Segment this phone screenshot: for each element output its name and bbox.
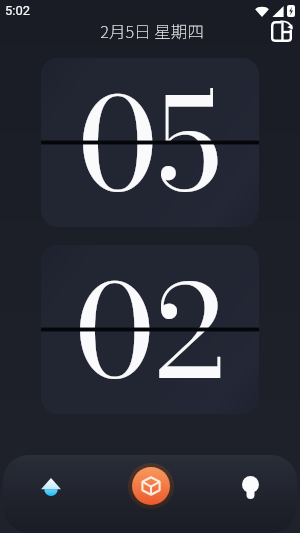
button[interactable]: 3D cube theme [128,463,174,509]
button[interactable]: Night light [228,465,272,509]
staticText: 5:02 [5,3,31,18]
staticText: 02 [75,245,225,403]
staticText: 2月5日 星期四 [100,19,204,43]
button[interactable]: 02 [41,245,259,414]
staticText: 05 [78,58,222,216]
button[interactable]: 05 [41,58,259,227]
button[interactable]: Themes [29,465,73,509]
button[interactable]: Rotate screen orientation [266,16,296,46]
